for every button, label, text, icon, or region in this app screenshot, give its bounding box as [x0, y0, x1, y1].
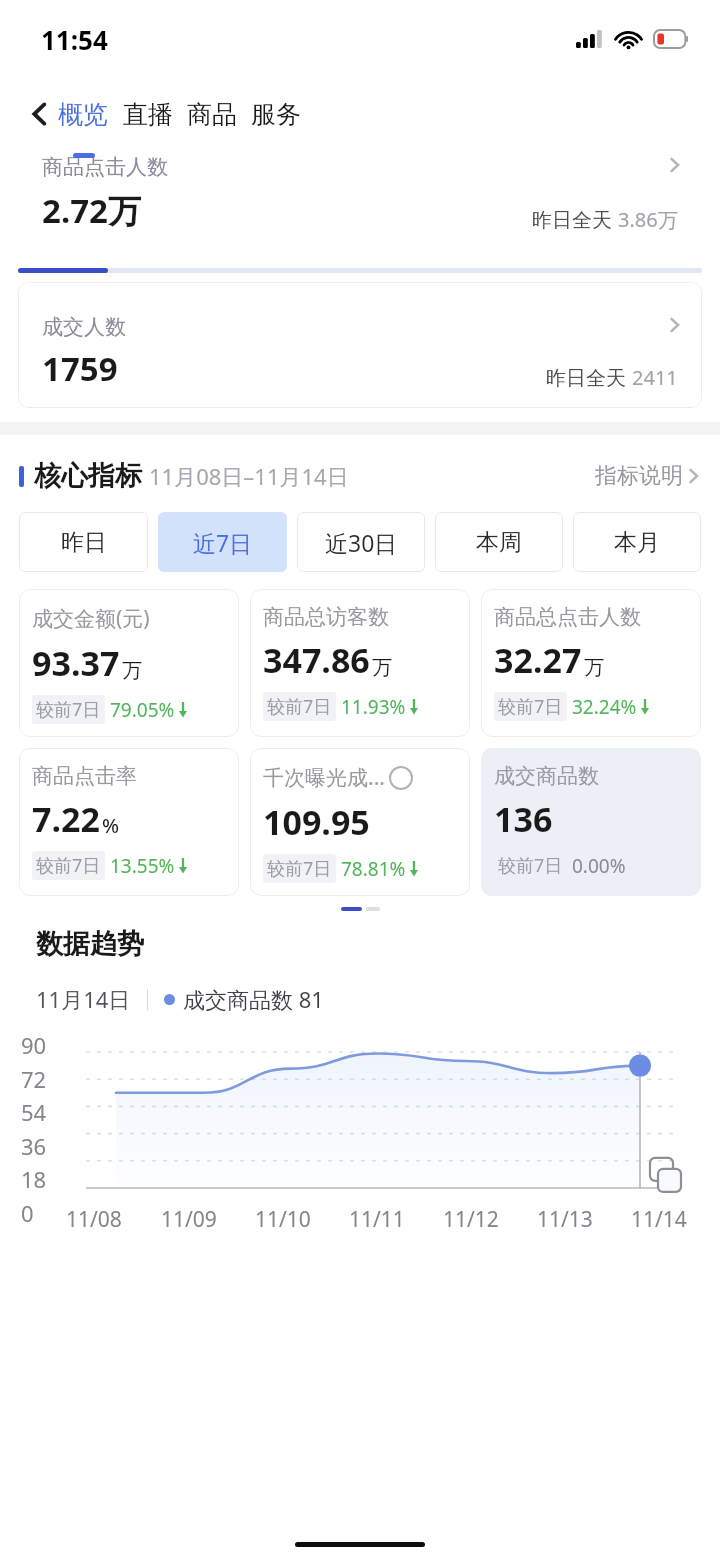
- button[interactable]: 商品总访客数: [250, 589, 470, 737]
- button[interactable]: 成交金额(元): [19, 589, 239, 737]
- staticText: 11月14日: [36, 984, 131, 1014]
- staticText: 78.81%: [341, 856, 406, 882]
- staticText: 2411: [632, 364, 678, 391]
- staticText: 11:54: [41, 22, 108, 57]
- button[interactable]: 成交人数: [18, 282, 702, 408]
- button[interactable]: 昨日: [19, 512, 148, 572]
- staticText: 成交商品数: [494, 763, 599, 789]
- button[interactable]: 近30日: [297, 512, 425, 572]
- staticText: 54: [21, 1097, 47, 1127]
- staticText: 1759: [42, 346, 118, 391]
- staticText: 商品总访客数: [263, 604, 389, 630]
- button[interactable]: 商品点击人数: [18, 150, 702, 276]
- staticText: 较前7日: [267, 856, 332, 881]
- button[interactable]: 指标说明: [595, 462, 701, 490]
- staticText: 90: [21, 1030, 47, 1060]
- staticText: 商品: [187, 99, 237, 130]
- staticText: 72: [21, 1064, 47, 1094]
- button[interactable]: 服务: [249, 78, 303, 150]
- staticText: 概览: [58, 99, 108, 130]
- button[interactable]: 本月: [573, 512, 701, 572]
- staticText: 成交人数: [42, 314, 126, 340]
- button[interactable]: Back: [14, 88, 66, 140]
- staticText: 0.00%: [572, 853, 626, 879]
- staticText: 11/09: [161, 1205, 217, 1234]
- staticText: 0: [21, 1198, 34, 1228]
- staticText: 109.95: [263, 799, 370, 845]
- staticText: 11/11: [349, 1205, 405, 1234]
- staticText: 千次曝光成...: [263, 763, 385, 792]
- staticText: 较前7日: [498, 853, 563, 878]
- staticText: 万: [372, 655, 392, 680]
- staticText: 成交金额(元): [32, 604, 150, 633]
- staticText: 11/14: [631, 1205, 687, 1234]
- staticText: 近30日: [325, 527, 398, 558]
- staticText: 昨日全天: [532, 206, 618, 233]
- staticText: 3.86万: [618, 206, 678, 233]
- staticText: 较前7日: [498, 694, 563, 719]
- staticText: 11.93%: [341, 694, 406, 720]
- staticText: 商品总点击人数: [494, 604, 641, 630]
- staticText: 直播: [123, 99, 173, 130]
- staticText: 347.86: [263, 637, 370, 683]
- staticText: 成交商品数 81: [183, 984, 324, 1014]
- staticText: 11/12: [443, 1205, 499, 1234]
- staticText: 11/10: [255, 1205, 311, 1234]
- staticText: 2.72万: [42, 188, 141, 233]
- button[interactable]: 直播: [121, 78, 175, 150]
- staticText: 11/08: [66, 1205, 122, 1234]
- staticText: 较前7日: [36, 697, 101, 722]
- staticText: 较前7日: [267, 694, 332, 719]
- button[interactable]: 千次曝光成...: [250, 748, 470, 896]
- staticText: 7.22: [32, 796, 100, 842]
- staticText: 核心指标: [34, 459, 142, 493]
- staticText: 32.27: [494, 637, 582, 683]
- staticText: 32.24%: [572, 694, 637, 720]
- staticText: %: [102, 812, 120, 839]
- staticText: 11/13: [537, 1205, 593, 1234]
- staticText: 11月08日–11月14日: [149, 461, 349, 491]
- staticText: 本月: [614, 528, 660, 557]
- staticText: 近7日: [193, 527, 253, 558]
- staticText: 服务: [251, 99, 301, 130]
- staticText: 79.05%: [110, 697, 175, 723]
- staticText: 万: [122, 658, 142, 683]
- button[interactable]: 本周: [435, 512, 563, 572]
- button[interactable]: 概览: [56, 78, 110, 150]
- staticText: 93.37: [32, 640, 120, 686]
- staticText: 万: [584, 655, 604, 680]
- staticText: 本周: [476, 528, 522, 557]
- staticText: 昨日全天: [546, 364, 632, 391]
- staticText: 36: [21, 1131, 47, 1161]
- staticText: 18: [21, 1164, 47, 1194]
- button[interactable]: 商品点击率: [19, 748, 239, 896]
- staticText: 数据趋势: [36, 927, 144, 961]
- staticText: 136: [494, 796, 553, 842]
- button[interactable]: 成交商品数: [481, 748, 701, 896]
- staticText: 指标说明: [595, 462, 683, 490]
- button[interactable]: 商品总点击人数: [481, 589, 701, 737]
- staticText: 较前7日: [36, 853, 101, 878]
- staticText: 商品点击人数: [42, 154, 168, 180]
- staticText: 13.55%: [110, 853, 175, 879]
- staticText: 昨日: [61, 528, 107, 557]
- staticText: 商品点击率: [32, 763, 137, 789]
- button[interactable]: 近7日: [158, 512, 287, 572]
- button[interactable]: 商品: [185, 78, 239, 150]
